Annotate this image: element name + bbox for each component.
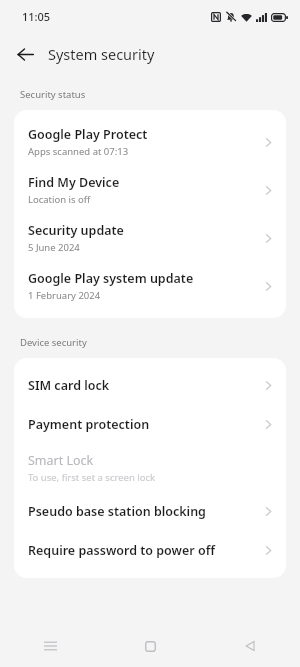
- staticText: Security status: [20, 88, 86, 101]
- staticText: 1 February 2024: [28, 289, 101, 302]
- staticText: Google Play system update: [28, 270, 194, 287]
- staticText: SIM card lock: [28, 377, 110, 394]
- staticText: Smart Lock: [28, 452, 94, 469]
- staticText: Require password to power off: [28, 542, 215, 559]
- button[interactable]: SIM card lock: [14, 366, 286, 405]
- button[interactable]: Recents: [0, 625, 100, 667]
- button[interactable]: Payment protection: [14, 405, 286, 444]
- button[interactable]: Google Play system update: [14, 262, 286, 310]
- staticText: Google Play Protect: [28, 126, 148, 143]
- button[interactable]: Back: [200, 625, 300, 667]
- staticText: Apps scanned at 07:13: [28, 145, 129, 158]
- button[interactable]: Pseudo base station blocking: [14, 492, 286, 531]
- staticText: System security: [48, 44, 155, 64]
- staticText: Location is off: [28, 193, 91, 206]
- button[interactable]: Require password to power off: [14, 531, 286, 570]
- staticText: Find My Device: [28, 174, 120, 191]
- staticText: Security update: [28, 222, 124, 239]
- staticText: 11:05: [22, 9, 51, 24]
- staticText: Device security: [20, 336, 87, 349]
- button[interactable]: Home: [100, 625, 200, 667]
- staticText: Payment protection: [28, 416, 150, 433]
- button: Smart Lock: [14, 444, 286, 492]
- staticText: To use, first set a screen lock: [28, 471, 156, 484]
- staticText: 5 June 2024: [28, 241, 80, 254]
- button[interactable]: Back: [9, 38, 42, 71]
- button[interactable]: Find My Device: [14, 166, 286, 214]
- staticText: Pseudo base station blocking: [28, 503, 206, 520]
- button[interactable]: Security update: [14, 214, 286, 262]
- button[interactable]: Google Play Protect: [14, 118, 286, 166]
